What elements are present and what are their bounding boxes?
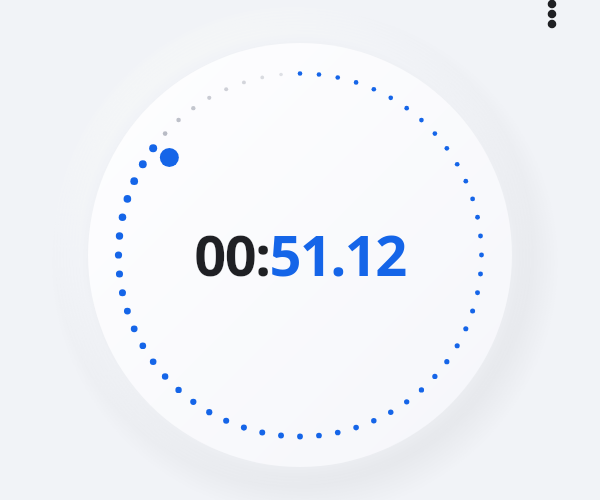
staticText: 00:51.12 <box>194 216 406 292</box>
